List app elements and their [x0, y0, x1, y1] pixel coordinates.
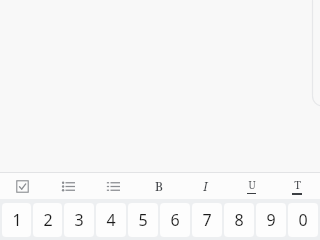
staticText: 9 [266, 209, 276, 231]
staticText: 2 [43, 209, 53, 231]
button[interactable]: Bulleted list [45, 173, 90, 199]
staticText: 8 [234, 209, 244, 231]
button[interactable]: 9 [256, 203, 286, 237]
staticText: 3 [74, 209, 84, 231]
staticText: 0 [298, 209, 308, 231]
button[interactable]: Italic [182, 173, 228, 199]
button[interactable]: 8 [224, 203, 254, 237]
button[interactable]: 1 [2, 203, 31, 237]
button[interactable]: Checklist [0, 173, 45, 199]
staticText: 5 [138, 209, 148, 231]
button[interactable]: 0 [288, 203, 318, 237]
button[interactable]: 4 [96, 203, 126, 237]
button[interactable]: 5 [128, 203, 158, 237]
button[interactable]: Text color [274, 173, 320, 199]
button[interactable]: Underline [228, 173, 274, 199]
staticText: T [294, 177, 301, 192]
button[interactable]: 6 [160, 203, 190, 237]
staticText: 6 [170, 209, 180, 231]
staticText: U [248, 178, 256, 192]
button[interactable]: 7 [192, 203, 222, 237]
button[interactable]: Numbered list [90, 173, 136, 199]
staticText: B [155, 178, 163, 194]
button[interactable]: 3 [64, 203, 94, 237]
button[interactable]: Bold [136, 173, 182, 199]
staticText: I [203, 178, 208, 194]
staticText: 1 [12, 209, 22, 231]
staticText: 4 [106, 209, 116, 231]
staticText: 7 [202, 209, 212, 231]
button[interactable]: 2 [33, 203, 62, 237]
